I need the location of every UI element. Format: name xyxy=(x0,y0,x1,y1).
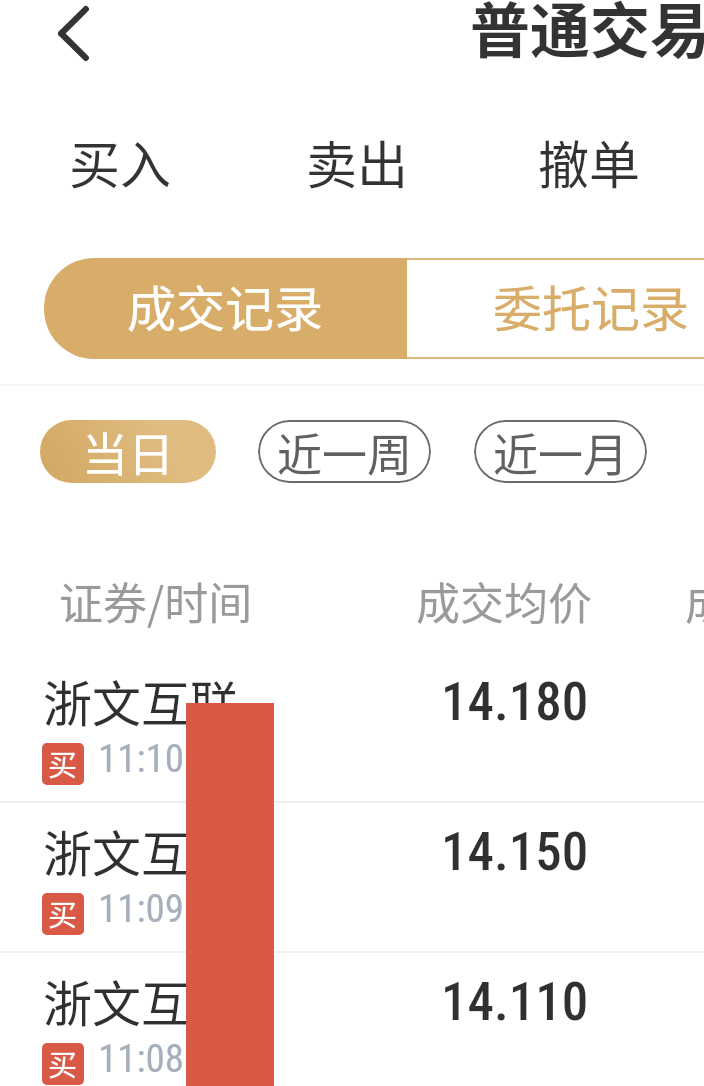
staticText: 近一月 xyxy=(493,420,629,483)
staticText: 11:10 xyxy=(98,736,185,782)
button[interactable]: 浙文互联 xyxy=(0,652,704,802)
staticText: 撤单 xyxy=(538,125,641,199)
button[interactable]: 近一周 xyxy=(258,420,431,483)
staticText: 浙文互联 xyxy=(43,815,240,886)
button[interactable]: 撤单 xyxy=(522,120,656,204)
staticText: 买 xyxy=(48,893,78,934)
staticText: 14.180 xyxy=(441,671,589,733)
staticText: 浙文互联 xyxy=(43,665,240,736)
staticText: 14.150 xyxy=(441,821,589,883)
staticText: 买 xyxy=(48,1043,78,1084)
staticText: 11:08 xyxy=(98,1036,185,1082)
staticText: 浙文互联 xyxy=(43,965,240,1036)
staticText: 委托记录 xyxy=(493,270,690,341)
button[interactable]: 浙文互联 xyxy=(0,802,704,952)
staticText: 11:09 xyxy=(98,886,185,932)
staticText: 当日 xyxy=(82,420,174,481)
button[interactable]: 委托记录 xyxy=(407,258,704,359)
staticText: 14.110 xyxy=(441,971,589,1033)
staticText: 近一周 xyxy=(277,420,413,483)
staticText: 成交数量 xyxy=(685,569,704,633)
button[interactable]: Back xyxy=(45,5,102,62)
button[interactable]: 浙文互联 xyxy=(0,952,704,1086)
staticText: 成交记录 xyxy=(127,270,324,341)
staticText: 买 xyxy=(48,743,78,784)
staticText: 证券/时间 xyxy=(59,569,253,633)
staticText: 普通交易 xyxy=(470,0,704,70)
button[interactable]: 成交记录 xyxy=(44,258,407,359)
staticText: 买入 xyxy=(69,125,172,199)
staticText: 成交均价 xyxy=(416,569,592,633)
staticText: 卖出 xyxy=(306,125,409,199)
button[interactable]: 当日 xyxy=(40,420,216,483)
button[interactable]: 卖出 xyxy=(290,120,424,204)
button[interactable]: 近一月 xyxy=(474,420,647,483)
button[interactable]: 买入 xyxy=(53,120,187,204)
